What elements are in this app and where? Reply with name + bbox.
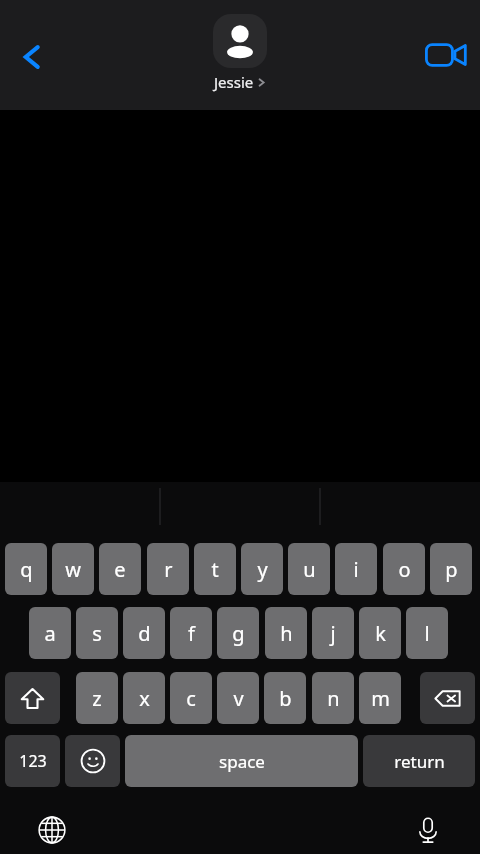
staticText: Jessie (214, 72, 254, 92)
staticText: f (188, 620, 195, 647)
staticText: u (303, 556, 316, 583)
staticText: j (330, 620, 336, 647)
staticText: g (232, 620, 245, 647)
button[interactable]: c (170, 672, 212, 724)
staticText: space (219, 750, 265, 773)
button[interactable]: r (147, 543, 189, 595)
button[interactable]: m (359, 672, 401, 724)
button[interactable]: Video call (418, 27, 474, 83)
button[interactable]: return (363, 735, 475, 787)
button[interactable]: space (125, 735, 358, 787)
staticText: d (138, 620, 151, 647)
staticText: m (371, 685, 390, 712)
button[interactable]: Emoji (65, 735, 120, 787)
button[interactable]: i (335, 543, 377, 595)
staticText: w (65, 556, 81, 583)
button[interactable]: a (29, 607, 71, 659)
button[interactable]: d (123, 607, 165, 659)
button[interactable]: t (194, 543, 236, 595)
button[interactable]: k (359, 607, 401, 659)
staticText: n (327, 685, 340, 712)
staticText: t (211, 556, 219, 583)
button[interactable]: Jessie (213, 14, 267, 92)
button[interactable]: w (52, 543, 94, 595)
button[interactable]: f (170, 607, 212, 659)
staticText: z (92, 685, 102, 712)
staticText: r (164, 556, 173, 583)
staticText: q (20, 556, 33, 583)
staticText: p (445, 556, 458, 583)
staticText: i (353, 556, 359, 583)
button[interactable]: x (123, 672, 165, 724)
button[interactable]: q (5, 543, 47, 595)
button[interactable]: g (217, 607, 259, 659)
staticText: return (394, 750, 445, 773)
staticText: b (279, 685, 292, 712)
button[interactable]: j (312, 607, 354, 659)
button[interactable]: Backspace (420, 672, 475, 724)
button[interactable]: h (265, 607, 307, 659)
button[interactable]: z (76, 672, 118, 724)
staticText: y (257, 556, 268, 583)
button[interactable]: u (288, 543, 330, 595)
staticText: x (139, 685, 150, 712)
staticText: h (280, 620, 293, 647)
button[interactable]: y (241, 543, 283, 595)
button[interactable]: v (217, 672, 259, 724)
button[interactable]: Back (8, 33, 56, 81)
button[interactable]: Shift (5, 672, 60, 724)
button[interactable]: s (76, 607, 118, 659)
staticText: s (92, 620, 102, 647)
staticText: c (186, 685, 196, 712)
staticText: 123 (19, 750, 47, 772)
button[interactable]: b (264, 672, 306, 724)
button[interactable]: Dictate (404, 806, 452, 854)
button[interactable]: 123 (5, 735, 60, 787)
button[interactable]: l (406, 607, 448, 659)
staticText: a (44, 620, 56, 647)
button[interactable]: e (99, 543, 141, 595)
staticText: k (375, 620, 386, 647)
button[interactable]: p (430, 543, 472, 595)
button[interactable]: Change keyboard language (28, 806, 76, 854)
button[interactable]: o (383, 543, 425, 595)
button[interactable]: n (312, 672, 354, 724)
staticText: o (398, 556, 411, 583)
staticText: l (424, 620, 430, 647)
staticText: e (114, 556, 126, 583)
staticText: v (233, 685, 244, 712)
